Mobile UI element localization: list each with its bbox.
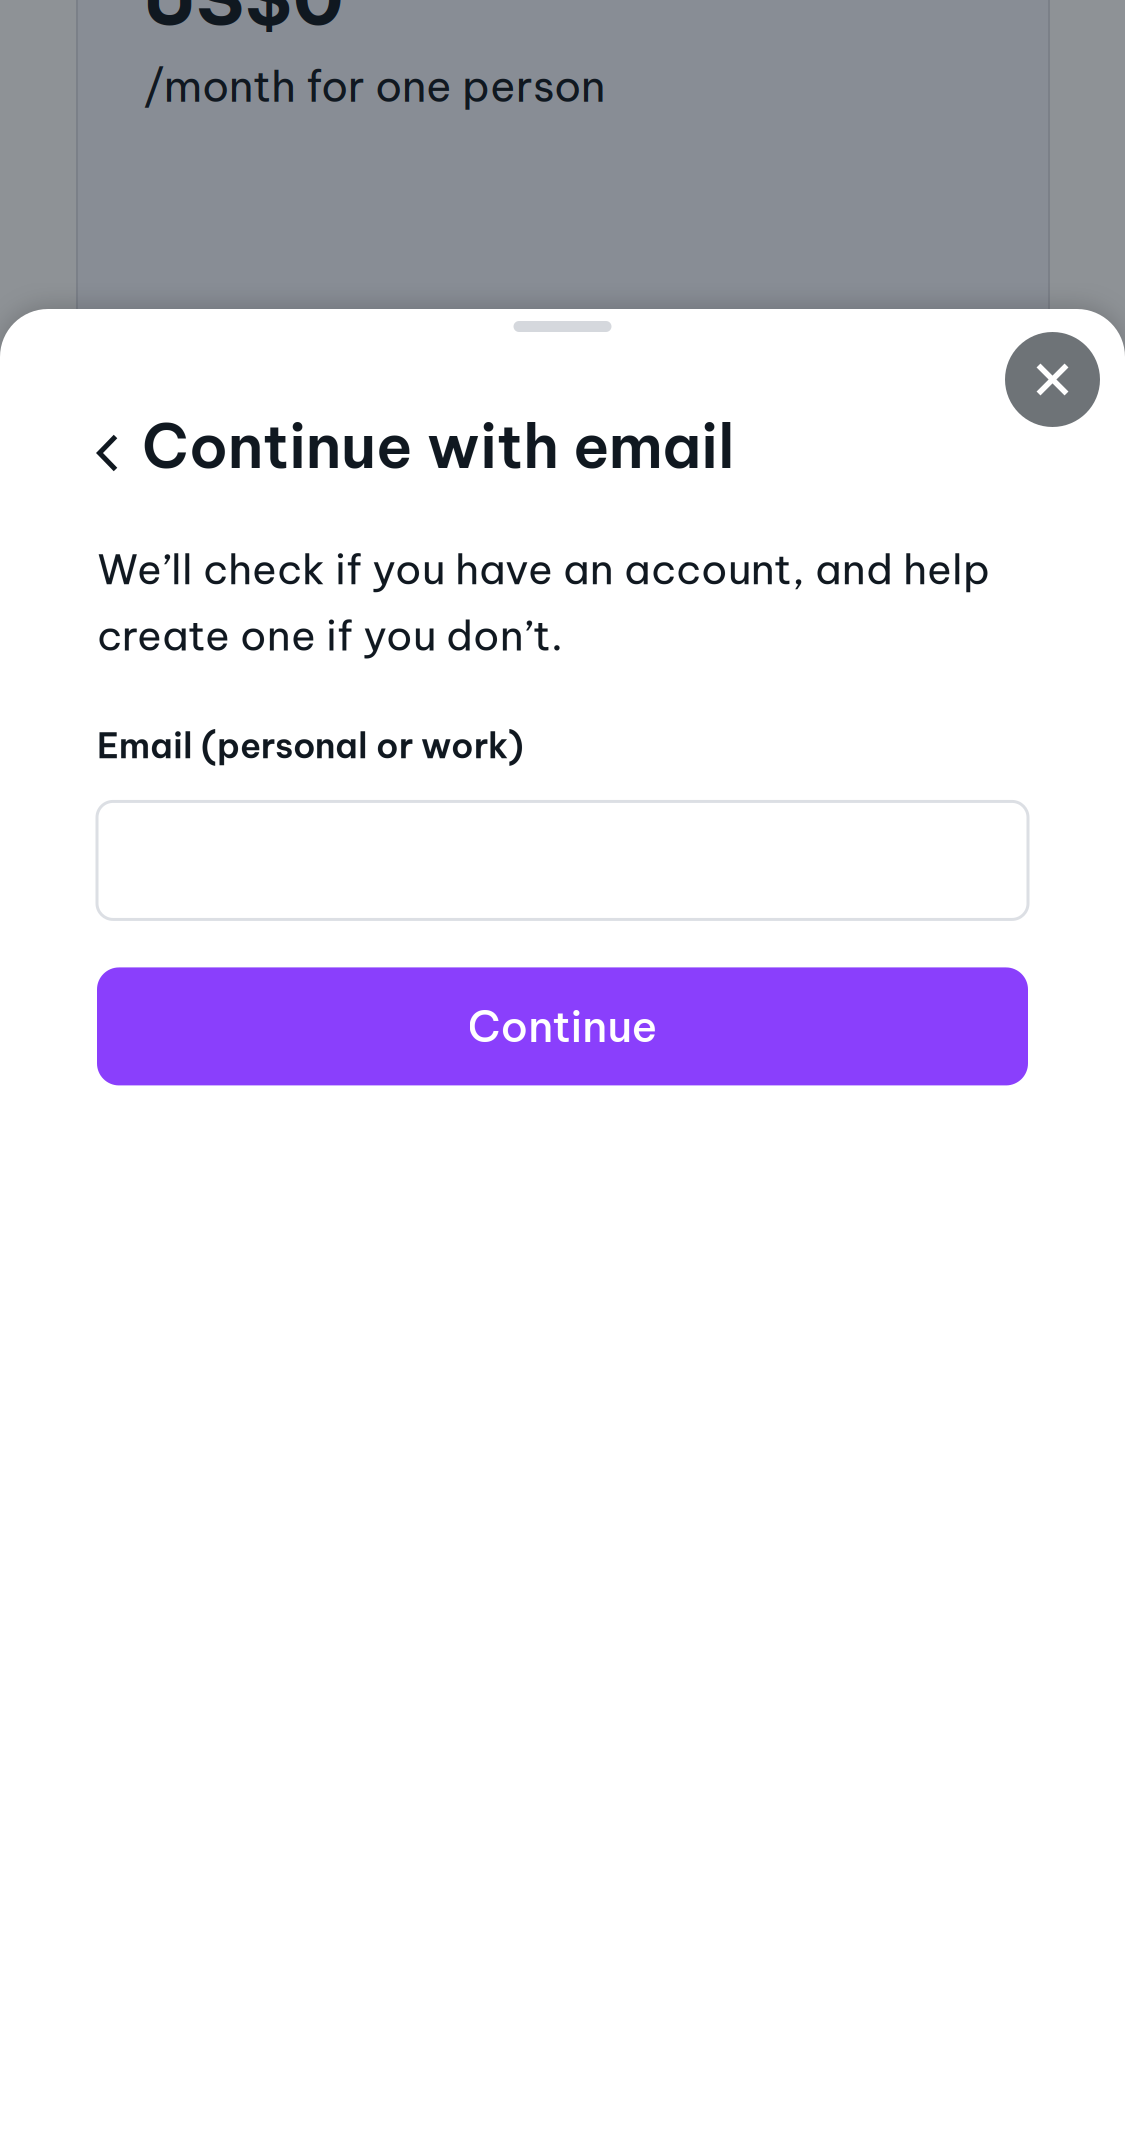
button[interactable]: Continue <box>97 967 1028 1085</box>
staticText: US$0 <box>143 0 343 44</box>
staticText: Email (personal or work) <box>97 724 524 767</box>
button[interactable]: Email address <box>97 801 1028 919</box>
button[interactable]: Continue with email <box>97 422 735 470</box>
staticText: Continue <box>467 999 657 1053</box>
staticText: /month for one person <box>143 59 605 113</box>
staticText: Continue with email <box>142 408 735 484</box>
staticText: We’ll check if you have an account, and … <box>97 543 990 662</box>
button[interactable]: Close <box>1005 332 1100 427</box>
